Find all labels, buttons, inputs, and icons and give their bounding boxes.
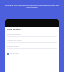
staticText: Expiry date	[7, 45, 19, 48]
button[interactable]: Save card	[7, 52, 57, 55]
staticText: Name on card	[7, 39, 22, 42]
staticText: Save card	[10, 52, 19, 55]
staticText: Card details	[7, 28, 21, 31]
button[interactable]: Expiry date	[5, 45, 59, 51]
staticText: Card number	[7, 33, 21, 36]
button[interactable]: Card number	[5, 33, 59, 39]
button[interactable]: Name on card	[5, 39, 59, 45]
staticText: Choose the payment method that works bes…	[4, 3, 60, 9]
